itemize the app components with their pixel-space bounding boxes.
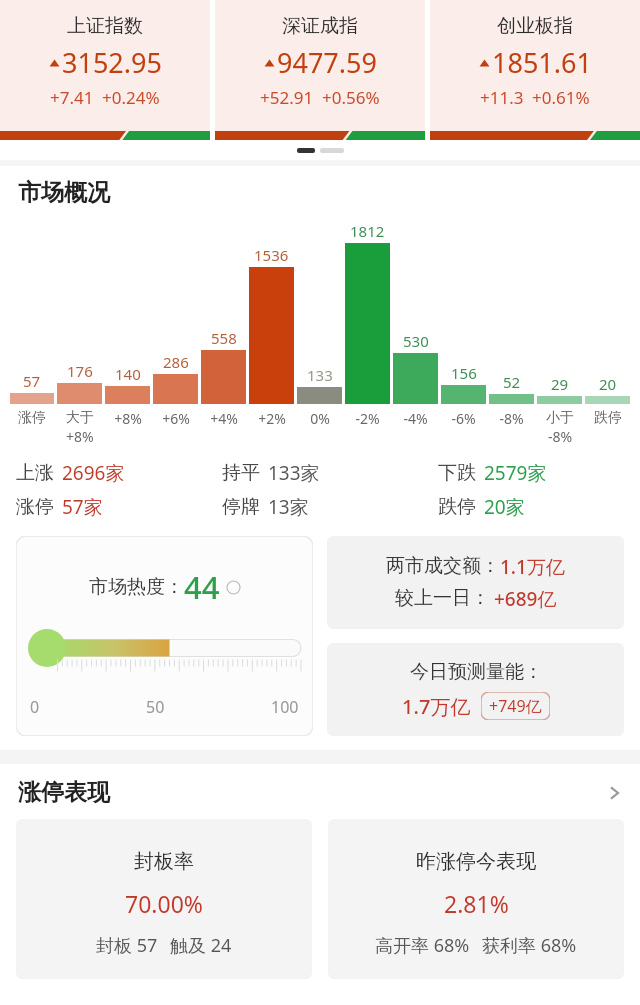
staticText: 44 <box>184 566 220 608</box>
staticText: 创业板指 <box>497 14 573 38</box>
button[interactable]: 涨停表现 <box>18 778 624 807</box>
staticText: 140 <box>115 364 141 384</box>
staticText: 20 <box>599 374 617 394</box>
staticText: 558 <box>211 328 237 348</box>
staticText: 较上一日： <box>395 586 490 610</box>
staticText: 高开率 68% <box>375 933 470 958</box>
staticText: 持平 <box>222 461 260 485</box>
staticText: 0% <box>310 409 330 428</box>
staticText: -8% <box>499 409 524 428</box>
staticText: 获利率 68% <box>482 933 577 958</box>
staticText: -8% <box>548 427 573 446</box>
staticText: 1851.61 <box>492 44 592 81</box>
button[interactable]: 昨涨停今表现 <box>328 819 624 979</box>
staticText: 133家 <box>268 460 320 486</box>
staticText: 70.00% <box>125 888 203 919</box>
staticText: 大于 <box>66 409 94 427</box>
staticText: 市场概况 <box>18 178 110 207</box>
button[interactable]: 深证成指 <box>215 0 425 140</box>
staticText: 0 <box>30 696 40 718</box>
button[interactable]: 今日预测量能： <box>327 643 624 736</box>
staticText: 2.81% <box>444 888 509 919</box>
staticText: +7.41 <box>50 86 94 109</box>
staticText: +8% <box>114 409 142 428</box>
staticText: 52 <box>503 372 521 392</box>
button[interactable]: 两市成交额： <box>327 536 624 629</box>
staticText: +11.3 <box>480 86 524 109</box>
staticText: 2579家 <box>484 460 547 486</box>
staticText: 昨涨停今表现 <box>416 849 536 874</box>
staticText: 530 <box>403 331 429 351</box>
staticText: 133 <box>307 365 333 385</box>
staticText: 上证指数 <box>67 14 143 38</box>
staticText: 涨停 <box>18 409 46 427</box>
staticText: +2% <box>258 409 286 428</box>
staticText: 176 <box>67 361 93 381</box>
staticText: +4% <box>210 409 238 428</box>
staticText: +0.24% <box>102 86 160 109</box>
staticText: 深证成指 <box>282 14 358 38</box>
staticText: +0.56% <box>322 86 380 109</box>
other: 查看更多 <box>604 783 624 803</box>
button[interactable]: 市场热度： <box>16 536 313 736</box>
staticText: 1812 <box>350 221 385 241</box>
staticText: +52.91 <box>260 86 314 109</box>
staticText: 封板率 <box>134 849 194 874</box>
staticText: 50 <box>146 696 165 718</box>
staticText: 286 <box>163 352 189 372</box>
staticText: 今日预测量能： <box>410 660 543 684</box>
staticText: +0.61% <box>532 86 590 109</box>
staticText: 1536 <box>254 245 289 265</box>
button[interactable]: 上证指数 <box>0 0 210 140</box>
staticText: -4% <box>403 409 428 428</box>
staticText: 触及 24 <box>170 933 232 958</box>
staticText: 3152.95 <box>62 44 162 81</box>
staticText: 上涨 <box>16 461 54 485</box>
staticText: 两市成交额： <box>386 554 500 578</box>
staticText: 57 <box>23 371 41 391</box>
staticText: 9477.59 <box>277 44 377 81</box>
staticText: 小于 <box>546 409 574 427</box>
staticText: 2696家 <box>62 460 125 486</box>
staticText: 停牌 <box>222 495 260 519</box>
staticText: 涨停 <box>16 495 54 519</box>
staticText: 13家 <box>268 494 309 520</box>
staticText: 跌停 <box>438 495 476 519</box>
other: 帮助说明 <box>226 580 241 595</box>
staticText: 1.7万亿 <box>402 693 471 720</box>
staticText: 封板 57 <box>96 933 158 958</box>
staticText: +8% <box>66 427 94 446</box>
staticText: 20家 <box>484 494 525 520</box>
staticText: -2% <box>355 409 380 428</box>
staticText: 57家 <box>62 494 103 520</box>
staticText: 156 <box>451 363 477 383</box>
staticText: 1.1万亿 <box>500 554 565 580</box>
staticText: 市场热度： <box>89 575 184 599</box>
staticText: 100 <box>271 696 299 718</box>
staticText: +6% <box>162 409 190 428</box>
staticText: 下跌 <box>438 461 476 485</box>
staticText: 涨停表现 <box>18 778 110 807</box>
staticText: 跌停 <box>594 409 622 427</box>
staticText: 29 <box>551 374 569 394</box>
button[interactable]: 封板率 <box>16 819 312 979</box>
staticText: +689亿 <box>494 586 557 612</box>
staticText: -6% <box>451 409 476 428</box>
staticText: +749亿 <box>489 695 542 717</box>
button[interactable]: 创业板指 <box>430 0 640 140</box>
